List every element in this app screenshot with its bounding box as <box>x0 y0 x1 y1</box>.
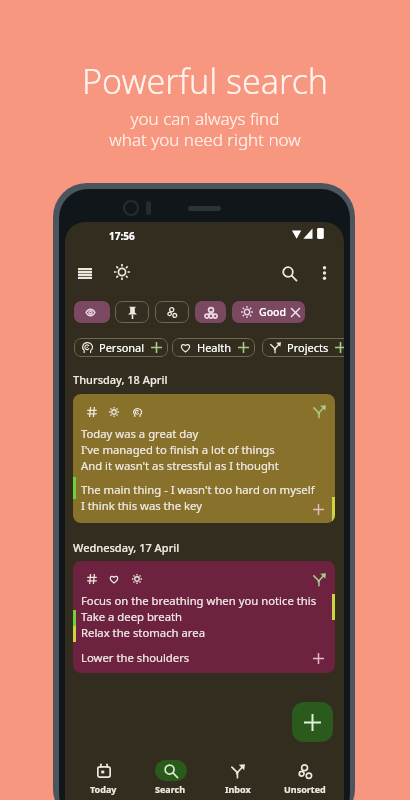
button[interactable]: Categories filter <box>195 301 226 323</box>
button[interactable]: More options <box>311 261 337 285</box>
staticText: The main thing - I wasn't too hard on my… <box>81 482 315 497</box>
button[interactable]: Unsorted <box>271 756 338 800</box>
staticText: Today <box>90 783 117 795</box>
button[interactable]: Health tag <box>172 338 255 357</box>
button[interactable]: Visibility filter <box>74 301 110 323</box>
staticText: Focus on the breathing when you notice t… <box>81 593 317 608</box>
button[interactable]: Personal tag <box>74 338 168 357</box>
button[interactable]: Theme <box>109 260 135 284</box>
staticText: I think this was the key <box>81 498 202 513</box>
button[interactable]: Search <box>137 756 204 800</box>
staticText: Take a deep breath <box>81 609 183 624</box>
button[interactable]: Unsorted filter <box>155 301 189 323</box>
staticText: I've managed to finish a lot of things <box>81 442 275 457</box>
staticText: Search <box>155 783 186 795</box>
staticText: Today was a great day <box>81 426 199 441</box>
staticText: Health <box>197 340 232 355</box>
button[interactable]: Today was a great day <box>73 394 335 523</box>
staticText: Unsorted <box>284 783 326 795</box>
button[interactable]: Pinned filter <box>115 301 149 323</box>
button[interactable]: Good <box>232 301 305 323</box>
staticText: Inbox <box>225 783 251 795</box>
staticText: Powerful search <box>82 58 329 104</box>
staticText: And it wasn't as stressful as I thought <box>81 458 279 473</box>
staticText: Relax the stomach area <box>81 625 205 640</box>
staticText: Projects <box>287 340 329 355</box>
button[interactable]: Focus on the breathing when you notice t… <box>73 561 335 673</box>
button[interactable]: Inbox <box>204 756 271 800</box>
staticText: Lower the shoulders <box>81 650 190 665</box>
staticText: 17:56 <box>109 229 135 243</box>
button[interactable]: Today <box>70 756 137 800</box>
staticText: Personal <box>99 340 145 355</box>
staticText: Wednesday, 17 April <box>73 540 180 555</box>
button[interactable]: Menu <box>72 262 98 284</box>
button[interactable]: Search <box>276 261 302 285</box>
button[interactable]: Add note <box>292 702 333 742</box>
staticText: Thursday, 18 April <box>73 372 168 387</box>
button[interactable]: Projects tag <box>262 338 344 357</box>
staticText: Good <box>259 305 286 319</box>
staticText: you can always find what you need right … <box>109 107 301 151</box>
